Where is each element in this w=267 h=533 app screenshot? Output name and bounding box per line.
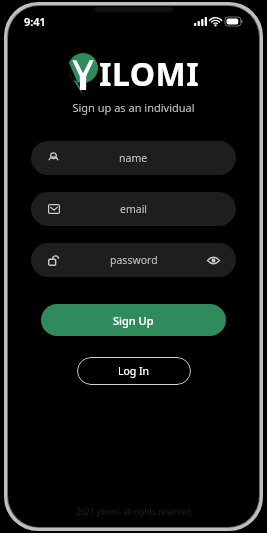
button[interactable]: Show password xyxy=(205,252,221,268)
staticText: ILOMI xyxy=(99,52,200,96)
staticText: 9:41 xyxy=(24,14,46,29)
staticText: email xyxy=(120,202,148,216)
button[interactable]: email xyxy=(31,192,236,226)
staticText: password xyxy=(110,253,158,267)
staticText: name xyxy=(119,151,148,165)
staticText: Log In xyxy=(118,364,150,378)
staticText: Sign Up xyxy=(113,313,154,328)
button[interactable]: Sign Up xyxy=(41,304,226,336)
staticText: Sign up as an individual xyxy=(8,100,259,115)
staticText: 2021 yilomi, all rights reserved xyxy=(8,506,259,517)
button[interactable]: Log In xyxy=(77,357,191,385)
button[interactable]: password xyxy=(31,243,236,277)
button[interactable]: name xyxy=(31,141,236,175)
